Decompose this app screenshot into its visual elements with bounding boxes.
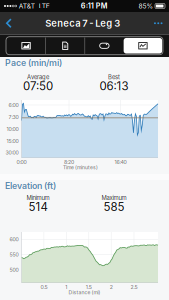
staticText: 10:00 <box>6 126 18 132</box>
staticText: 0:00 <box>16 159 26 165</box>
staticText: 15:00 <box>6 138 18 144</box>
staticText: 1 <box>65 284 67 290</box>
staticText: 07:50 <box>23 79 53 93</box>
staticText: 1.5 <box>86 284 92 290</box>
staticText: 514 <box>28 200 47 214</box>
button[interactable]: Laps <box>85 38 124 53</box>
button[interactable]: More <box>149 12 167 34</box>
staticText: 550 <box>9 251 18 258</box>
staticText: Pace (min/mi) <box>5 57 62 68</box>
button[interactable]: Details <box>46 38 85 53</box>
staticText: Distance (mi) <box>68 289 100 295</box>
staticText: 06:13 <box>99 79 128 93</box>
staticText: 6:11 PM <box>81 2 108 10</box>
staticText: 8:20 <box>64 159 74 165</box>
staticText: 600 <box>9 236 18 242</box>
staticText: Best <box>108 73 120 81</box>
staticText: 7:30 <box>8 114 18 120</box>
staticText: Time (minutes) <box>63 164 98 170</box>
staticText: 6:00 <box>8 102 18 108</box>
staticText: AT&T <box>17 2 35 10</box>
staticText: 16:40 <box>114 159 126 165</box>
staticText: 2.5 <box>130 284 137 290</box>
staticText: LTE <box>35 2 50 10</box>
staticText: Maximum <box>101 194 126 201</box>
staticText: Elevation (ft) <box>5 180 56 191</box>
staticText: 30:00 <box>5 149 18 156</box>
staticText: 585 <box>103 200 124 214</box>
staticText: Seneca 7 - Leg 3 <box>45 17 120 29</box>
staticText: 85% <box>139 2 154 10</box>
button[interactable]: Back <box>2 12 16 34</box>
staticText: Minimum <box>26 194 49 201</box>
button[interactable]: Map <box>7 38 45 53</box>
staticText: 2 <box>110 284 113 290</box>
staticText: 0.5 <box>40 284 47 290</box>
staticText: Average <box>27 73 49 81</box>
staticText: 500 <box>9 267 18 273</box>
button[interactable]: Charts <box>124 38 162 53</box>
